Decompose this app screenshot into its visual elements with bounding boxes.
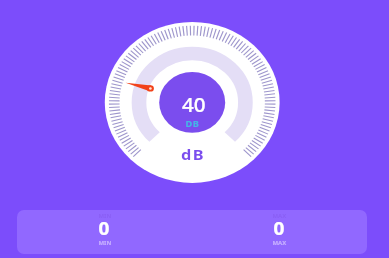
button[interactable]: MIN xyxy=(17,210,192,254)
staticText: MIN xyxy=(98,239,111,246)
button[interactable]: MAX xyxy=(192,210,367,254)
staticText: dB xyxy=(181,144,205,162)
staticText: MAX xyxy=(272,212,286,219)
staticText: MAX xyxy=(272,239,286,246)
staticText: 0 xyxy=(98,216,110,240)
staticText: 0 xyxy=(273,216,285,240)
staticText: DB xyxy=(185,118,201,130)
staticText: 40 xyxy=(182,92,206,116)
staticText: MIN xyxy=(98,212,111,219)
